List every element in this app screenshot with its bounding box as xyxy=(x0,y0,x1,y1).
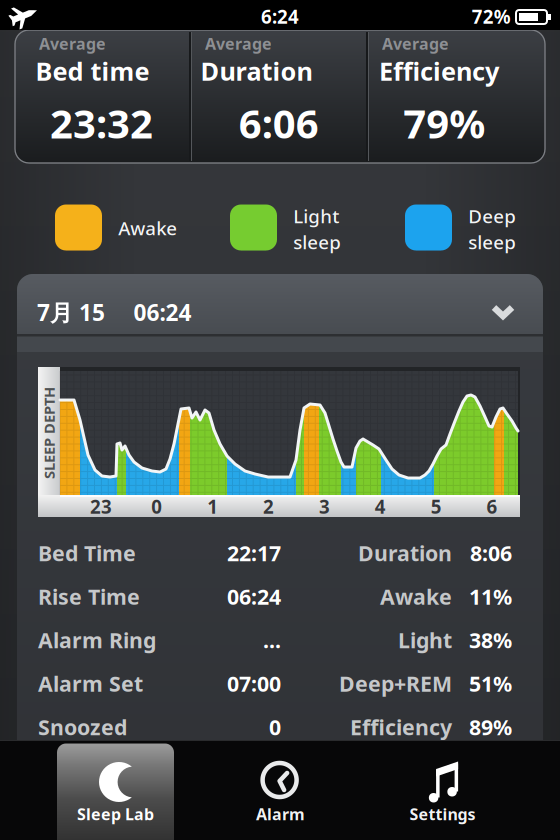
staticText: 72% xyxy=(472,4,511,29)
staticText: 0 xyxy=(269,713,281,741)
staticText: Bed time xyxy=(35,54,149,88)
staticText: 06:24 xyxy=(227,582,281,611)
staticText: 4 xyxy=(375,494,386,519)
staticText: Average xyxy=(205,33,272,54)
staticText: 11% xyxy=(469,582,512,611)
staticText: Alarm xyxy=(256,803,305,825)
staticText: Alarm Set xyxy=(38,669,143,698)
staticText: 7月 15 xyxy=(37,297,105,327)
staticText: 07:00 xyxy=(227,669,281,698)
staticText: 1 xyxy=(207,494,218,519)
staticText: 23 xyxy=(90,494,112,519)
staticText: Efficiency xyxy=(350,713,452,741)
staticText: Duration xyxy=(358,539,452,567)
staticText: 06:24 xyxy=(134,297,192,327)
staticText: Average xyxy=(39,33,106,54)
staticText: 5 xyxy=(431,494,442,519)
button[interactable]: Sleep Lab xyxy=(55,743,175,840)
staticText: Sleep Lab xyxy=(77,803,154,825)
staticText: Awake xyxy=(380,582,452,611)
staticText: 23:32 xyxy=(50,96,153,149)
staticText: Light xyxy=(398,626,452,654)
button[interactable]: Settings xyxy=(368,743,518,840)
staticText: 22:17 xyxy=(227,539,281,567)
button[interactable]: Alarm xyxy=(206,743,356,840)
staticText: 6:24 xyxy=(261,4,299,29)
staticText: Alarm Ring xyxy=(38,626,156,654)
staticText: Snoozed xyxy=(38,713,127,741)
staticText: 6 xyxy=(486,494,497,519)
staticText: 51% xyxy=(469,669,512,698)
staticText: ... xyxy=(263,626,281,654)
button[interactable]: 7月 15 xyxy=(17,274,543,352)
staticText: Deep sleep xyxy=(468,204,516,254)
staticText: 3 xyxy=(319,494,330,519)
staticText: 2 xyxy=(263,494,274,519)
staticText: Duration xyxy=(200,54,312,88)
staticText: 89% xyxy=(469,713,512,741)
staticText: Deep+REM xyxy=(339,669,452,698)
staticText: 0 xyxy=(151,494,162,519)
staticText: Efficiency xyxy=(379,54,499,88)
staticText: 38% xyxy=(469,626,512,654)
staticText: Light sleep xyxy=(293,204,341,254)
staticText: Awake xyxy=(118,216,177,240)
staticText: Average xyxy=(382,33,449,54)
staticText: 6:06 xyxy=(239,96,319,149)
staticText: Settings xyxy=(410,803,476,825)
staticText: 79% xyxy=(403,96,485,149)
staticText: Bed Time xyxy=(38,539,136,567)
staticText: SLEEP DEPTH xyxy=(3,423,95,443)
staticText: Rise Time xyxy=(38,582,140,611)
staticText: 8:06 xyxy=(470,539,512,567)
